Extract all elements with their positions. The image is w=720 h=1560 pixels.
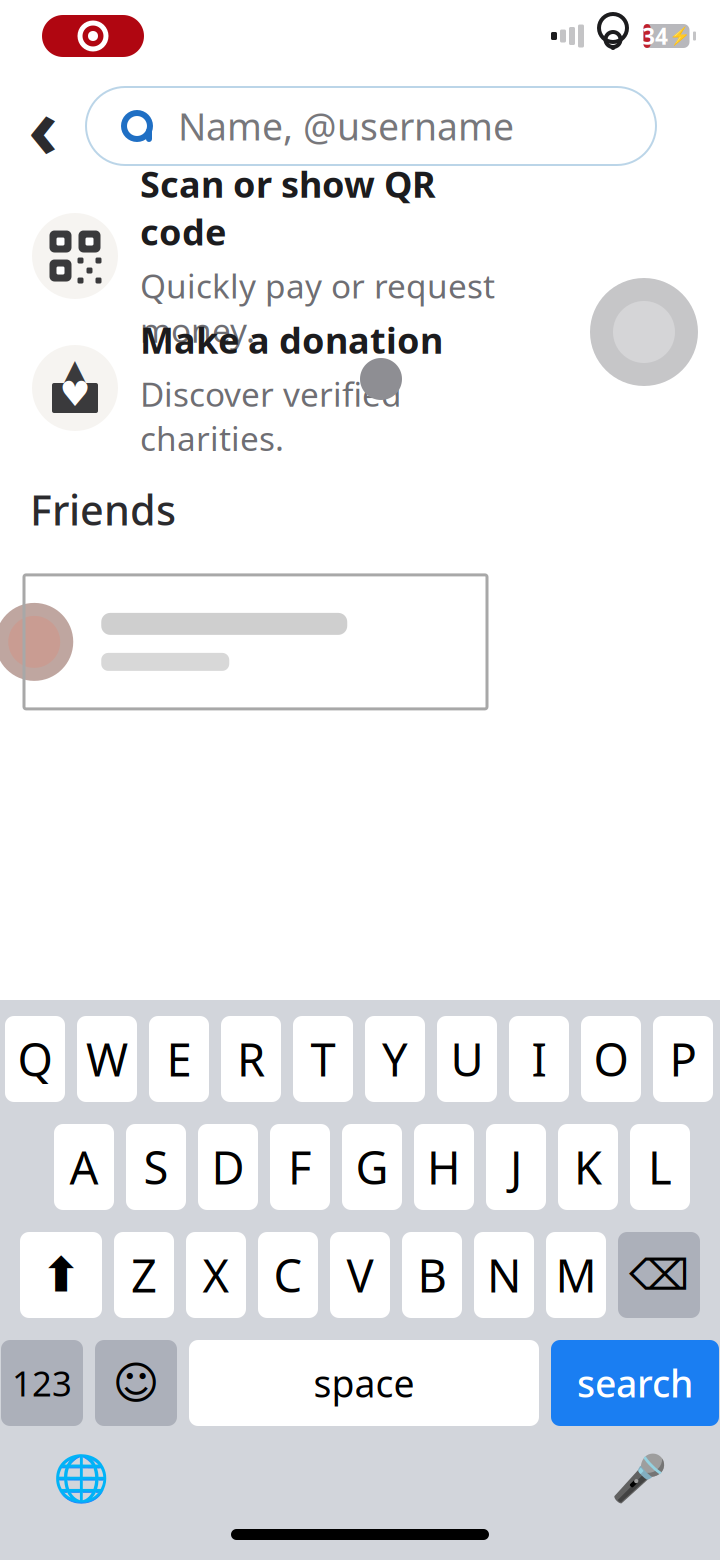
button[interactable]: Y: [365, 1016, 425, 1102]
button[interactable]: Scan or show QR code: [0, 208, 720, 304]
staticText: R: [237, 1029, 265, 1089]
staticText: Y: [382, 1029, 408, 1089]
button[interactable]: V: [330, 1232, 390, 1318]
button[interactable]: D: [198, 1124, 258, 1210]
button[interactable]: Delete: [618, 1232, 700, 1318]
button[interactable]: R: [221, 1016, 281, 1102]
button[interactable]: B: [402, 1232, 462, 1318]
button[interactable]: search: [551, 1340, 719, 1426]
staticText: Discover verified charities.: [140, 372, 402, 460]
staticText: 🎤: [611, 1453, 667, 1505]
button[interactable]: X: [186, 1232, 246, 1318]
staticText: B: [417, 1245, 446, 1305]
staticText: ⌫: [629, 1251, 689, 1299]
staticText: Make a donation: [140, 316, 443, 364]
staticText: L: [648, 1137, 672, 1197]
button[interactable]: P: [653, 1016, 713, 1102]
button[interactable]: Name, @username: [86, 87, 656, 165]
button[interactable]: Dictation: [610, 1450, 668, 1508]
button[interactable]: Shift: [20, 1232, 102, 1318]
staticText: F: [288, 1137, 312, 1197]
staticText: space: [313, 1358, 414, 1408]
staticText: ⚡: [669, 26, 691, 46]
staticText: C: [273, 1245, 302, 1305]
button[interactable]: Q: [5, 1016, 65, 1102]
staticText: E: [166, 1029, 191, 1089]
staticText: 34: [642, 21, 668, 51]
staticText: D: [211, 1137, 244, 1197]
staticText: ☺: [112, 1357, 159, 1409]
staticText: O: [593, 1029, 628, 1089]
button[interactable]: [24, 575, 487, 709]
staticText: Scan or show QR code: [140, 160, 436, 255]
button[interactable]: U: [437, 1016, 497, 1102]
button[interactable]: AssistiveTouch: [590, 278, 698, 386]
button[interactable]: A: [54, 1124, 114, 1210]
staticText: G: [355, 1137, 388, 1197]
button[interactable]: T: [293, 1016, 353, 1102]
staticText: Friends: [30, 482, 176, 537]
staticText: X: [202, 1245, 229, 1305]
staticText: Quickly pay or request money.: [140, 263, 495, 352]
button[interactable]: K: [558, 1124, 618, 1210]
staticText: N: [487, 1245, 521, 1305]
button[interactable]: F: [270, 1124, 330, 1210]
staticText: ⬆: [41, 1248, 81, 1302]
staticText: K: [574, 1137, 602, 1197]
staticText: 123: [12, 1360, 72, 1406]
button[interactable]: O: [581, 1016, 641, 1102]
staticText: S: [143, 1137, 168, 1197]
staticText: W: [86, 1029, 128, 1089]
staticText: P: [669, 1029, 696, 1089]
staticText: H: [427, 1137, 461, 1197]
staticText: I: [531, 1029, 546, 1089]
staticText: 🌐: [53, 1453, 109, 1505]
button[interactable]: Z: [114, 1232, 174, 1318]
staticText: ♥: [59, 374, 90, 414]
staticText: ▲: [59, 350, 90, 396]
staticText: U: [450, 1029, 483, 1089]
button[interactable]: G: [342, 1124, 402, 1210]
staticText: Z: [131, 1245, 157, 1305]
button[interactable]: H: [414, 1124, 474, 1210]
staticText: A: [69, 1137, 98, 1197]
staticText: Q: [17, 1029, 52, 1089]
button[interactable]: L: [630, 1124, 690, 1210]
staticText: J: [510, 1137, 522, 1197]
staticText: Name, @username: [178, 101, 514, 151]
staticText: ‹: [28, 71, 58, 181]
staticText: search: [577, 1358, 693, 1408]
button[interactable]: Emoji: [95, 1340, 177, 1426]
button[interactable]: 123: [1, 1340, 83, 1426]
button[interactable]: C: [258, 1232, 318, 1318]
staticText: T: [310, 1029, 335, 1089]
button[interactable]: I: [509, 1016, 569, 1102]
staticText: M: [555, 1245, 596, 1305]
button[interactable]: M: [546, 1232, 606, 1318]
button[interactable]: ▲: [0, 340, 720, 436]
button[interactable]: E: [149, 1016, 209, 1102]
staticText: V: [346, 1245, 373, 1305]
button[interactable]: Back: [0, 83, 86, 169]
button[interactable]: Next keyboard: [52, 1450, 110, 1508]
button[interactable]: W: [77, 1016, 137, 1102]
button[interactable]: S: [126, 1124, 186, 1210]
button[interactable]: space: [189, 1340, 539, 1426]
button[interactable]: J: [486, 1124, 546, 1210]
button[interactable]: N: [474, 1232, 534, 1318]
